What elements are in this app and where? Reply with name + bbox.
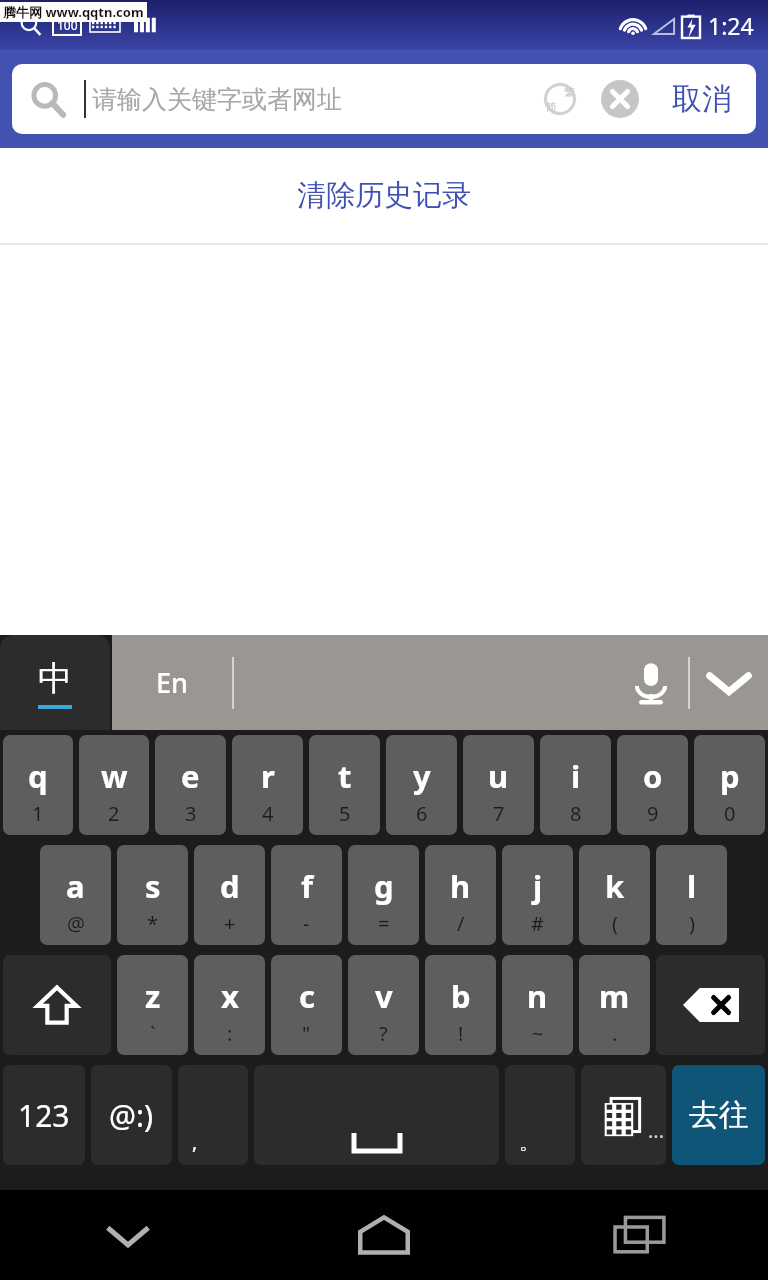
staticText: 去往 — [689, 1096, 749, 1134]
button[interactable] — [12, 64, 84, 134]
button[interactable]: w — [79, 735, 149, 835]
staticText: o — [643, 755, 663, 797]
staticText: l — [687, 865, 697, 907]
button[interactable]: 去往 — [672, 1065, 765, 1165]
staticText: m — [599, 975, 630, 1017]
button[interactable]: i — [540, 735, 611, 835]
button[interactable]: t — [309, 735, 380, 835]
staticText: 5 — [339, 800, 351, 827]
button[interactable]: 简繁转换 — [532, 71, 588, 127]
staticText: h — [450, 865, 471, 907]
staticText: , — [192, 1128, 198, 1155]
button[interactable]: g — [348, 845, 419, 945]
staticText: " — [302, 1020, 311, 1047]
staticText: a — [66, 865, 85, 907]
button[interactable]: 语音输入 — [614, 646, 688, 720]
button[interactable]: q — [3, 735, 73, 835]
button[interactable]: a — [40, 845, 111, 945]
staticText: 1:24 — [708, 10, 754, 41]
staticText: z — [145, 975, 161, 1017]
button[interactable]: r — [232, 735, 303, 835]
button[interactable]: 取消 — [648, 64, 756, 134]
staticText: : — [227, 1020, 233, 1047]
button[interactable]: Shift — [3, 955, 111, 1055]
staticText: 7 — [493, 800, 505, 827]
staticText: @ — [67, 910, 85, 937]
staticText: i — [571, 755, 581, 797]
staticText: x — [221, 975, 239, 1017]
button[interactable]: e — [155, 735, 226, 835]
button[interactable]: z — [117, 955, 188, 1055]
staticText: ) — [689, 910, 695, 937]
button[interactable]: n — [502, 955, 573, 1055]
button[interactable]: 清空 — [592, 71, 648, 127]
staticText: + — [224, 910, 236, 937]
staticText: ... — [648, 1117, 665, 1144]
button[interactable]: v — [348, 955, 419, 1055]
button[interactable]: , — [178, 1065, 248, 1165]
staticText: u — [488, 755, 509, 797]
button[interactable]: 返回 — [0, 1190, 256, 1280]
button[interactable]: 。 — [505, 1065, 575, 1165]
staticText: 123 — [18, 1095, 70, 1136]
staticText: . — [612, 1020, 618, 1047]
staticText: v — [375, 975, 393, 1017]
button[interactable]: l — [656, 845, 727, 945]
button[interactable]: m — [579, 955, 650, 1055]
button[interactable]: y — [386, 735, 457, 835]
staticText: 2 — [108, 800, 120, 827]
button[interactable]: b — [425, 955, 496, 1055]
staticText: 8 — [570, 800, 582, 827]
button[interactable]: 清除历史记录 — [0, 148, 768, 243]
staticText: ? — [379, 1020, 388, 1047]
staticText: k — [605, 865, 625, 907]
staticText: 取消 — [672, 80, 732, 118]
staticText: c — [299, 975, 315, 1017]
button[interactable]: j — [502, 845, 573, 945]
button[interactable]: o — [617, 735, 688, 835]
staticText: e — [181, 755, 200, 797]
staticText: n — [527, 975, 548, 1017]
button[interactable]: 更多符号 — [581, 1065, 666, 1165]
staticText: 1 — [32, 800, 44, 827]
button[interactable]: s — [117, 845, 188, 945]
staticText: 4 — [262, 800, 274, 827]
button[interactable]: 最近任务 — [512, 1190, 768, 1280]
staticText: @:) — [109, 1095, 154, 1136]
button[interactable]: k — [579, 845, 650, 945]
button[interactable]: p — [694, 735, 765, 835]
button[interactable]: En — [112, 635, 232, 730]
staticText: s — [145, 865, 161, 907]
button[interactable]: @:) — [91, 1065, 172, 1165]
button[interactable]: f — [271, 845, 342, 945]
staticText: = — [378, 910, 390, 937]
button[interactable]: c — [271, 955, 342, 1055]
staticText: d — [220, 865, 240, 907]
button[interactable]: 中 — [0, 635, 110, 730]
button[interactable]: x — [194, 955, 265, 1055]
staticText: t — [338, 755, 352, 797]
button[interactable]: d — [194, 845, 265, 945]
button[interactable]: 收起键盘 — [690, 635, 768, 730]
staticText: y — [413, 755, 431, 797]
button[interactable]: h — [425, 845, 496, 945]
staticText: 。 — [519, 1130, 539, 1155]
button[interactable]: 空格 — [254, 1065, 499, 1165]
staticText: q — [28, 755, 48, 797]
staticText: g — [374, 865, 394, 907]
staticText: p — [720, 755, 740, 797]
staticText: 简 — [546, 100, 557, 114]
staticText: En — [156, 664, 188, 701]
button[interactable]: 主屏幕 — [256, 1190, 512, 1280]
staticText: / — [457, 910, 465, 937]
staticText: 清除历史记录 — [297, 177, 471, 214]
staticText: b — [451, 975, 471, 1017]
button[interactable]: 退格 — [656, 955, 765, 1055]
staticText: w — [101, 755, 128, 797]
button[interactable]: u — [463, 735, 534, 835]
button[interactable]: 123 — [3, 1065, 85, 1165]
staticText: ~ — [532, 1020, 544, 1047]
staticText: # — [531, 910, 544, 937]
staticText: - — [303, 910, 310, 937]
staticText: 0 — [724, 800, 736, 827]
